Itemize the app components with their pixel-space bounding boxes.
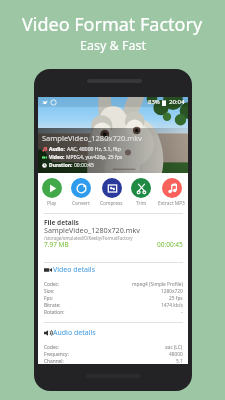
staticText: Video Format Factory xyxy=(22,12,203,37)
staticText: File details xyxy=(44,218,79,227)
staticText: Frequency: xyxy=(44,351,69,358)
staticText: 7.97 MB xyxy=(44,240,69,249)
staticText: Compress xyxy=(100,200,123,206)
staticText: Easy & Fast xyxy=(80,37,146,54)
button[interactable]: Compress xyxy=(96,178,126,206)
staticText: Video details xyxy=(53,265,95,275)
staticText: - xyxy=(181,309,183,316)
staticText: SampleVideo_1280x720.mkv xyxy=(42,133,143,143)
staticText: Audio details xyxy=(53,328,96,338)
staticText: Bitrate: xyxy=(44,302,61,309)
button[interactable]: Trim xyxy=(126,178,156,206)
staticText: AAC, 48000 Hz, 5.1, fltp xyxy=(67,146,121,153)
staticText: Audio: xyxy=(49,146,67,153)
staticText: 20:04 xyxy=(169,98,185,106)
staticText: 1280x720 xyxy=(161,288,183,295)
staticText: Play xyxy=(47,200,57,206)
staticText: 48000 xyxy=(169,351,183,358)
button[interactable]: Convert xyxy=(66,178,96,206)
staticText: /storage/emulated/0/Keeby/FormatFactory xyxy=(44,235,133,241)
staticText: Rotation: xyxy=(44,309,65,316)
staticText: 00:00:45 xyxy=(157,240,183,249)
button[interactable]: Play xyxy=(37,178,67,206)
staticText: Channel: xyxy=(44,358,64,365)
staticText: Size: xyxy=(44,288,55,295)
staticText: 00:00:45 xyxy=(74,162,94,169)
button[interactable]: Extract MP3 xyxy=(156,178,186,206)
staticText: Extract MP3 xyxy=(158,200,185,206)
staticText: Codec: xyxy=(44,344,60,351)
staticText: Duration: xyxy=(49,162,74,169)
staticText: 25 fps xyxy=(169,295,183,302)
staticText: 5.1 xyxy=(176,358,183,365)
staticText: 83% xyxy=(148,98,160,106)
staticText: Video: xyxy=(49,154,66,161)
staticText: MPEG4, yuv420p, 25 fps xyxy=(66,154,123,161)
staticText: Fps: xyxy=(44,295,54,302)
staticText: 1474 kb/s xyxy=(161,302,183,309)
staticText: SampleVideo_1280x720.mkv xyxy=(44,225,140,235)
staticText: mpeg4 (Simple Profile) xyxy=(132,281,183,288)
staticText: Trim xyxy=(136,200,147,206)
staticText: Convert xyxy=(72,200,90,206)
staticText: aac (LC) xyxy=(165,344,183,351)
staticText: Codec: xyxy=(44,281,60,288)
